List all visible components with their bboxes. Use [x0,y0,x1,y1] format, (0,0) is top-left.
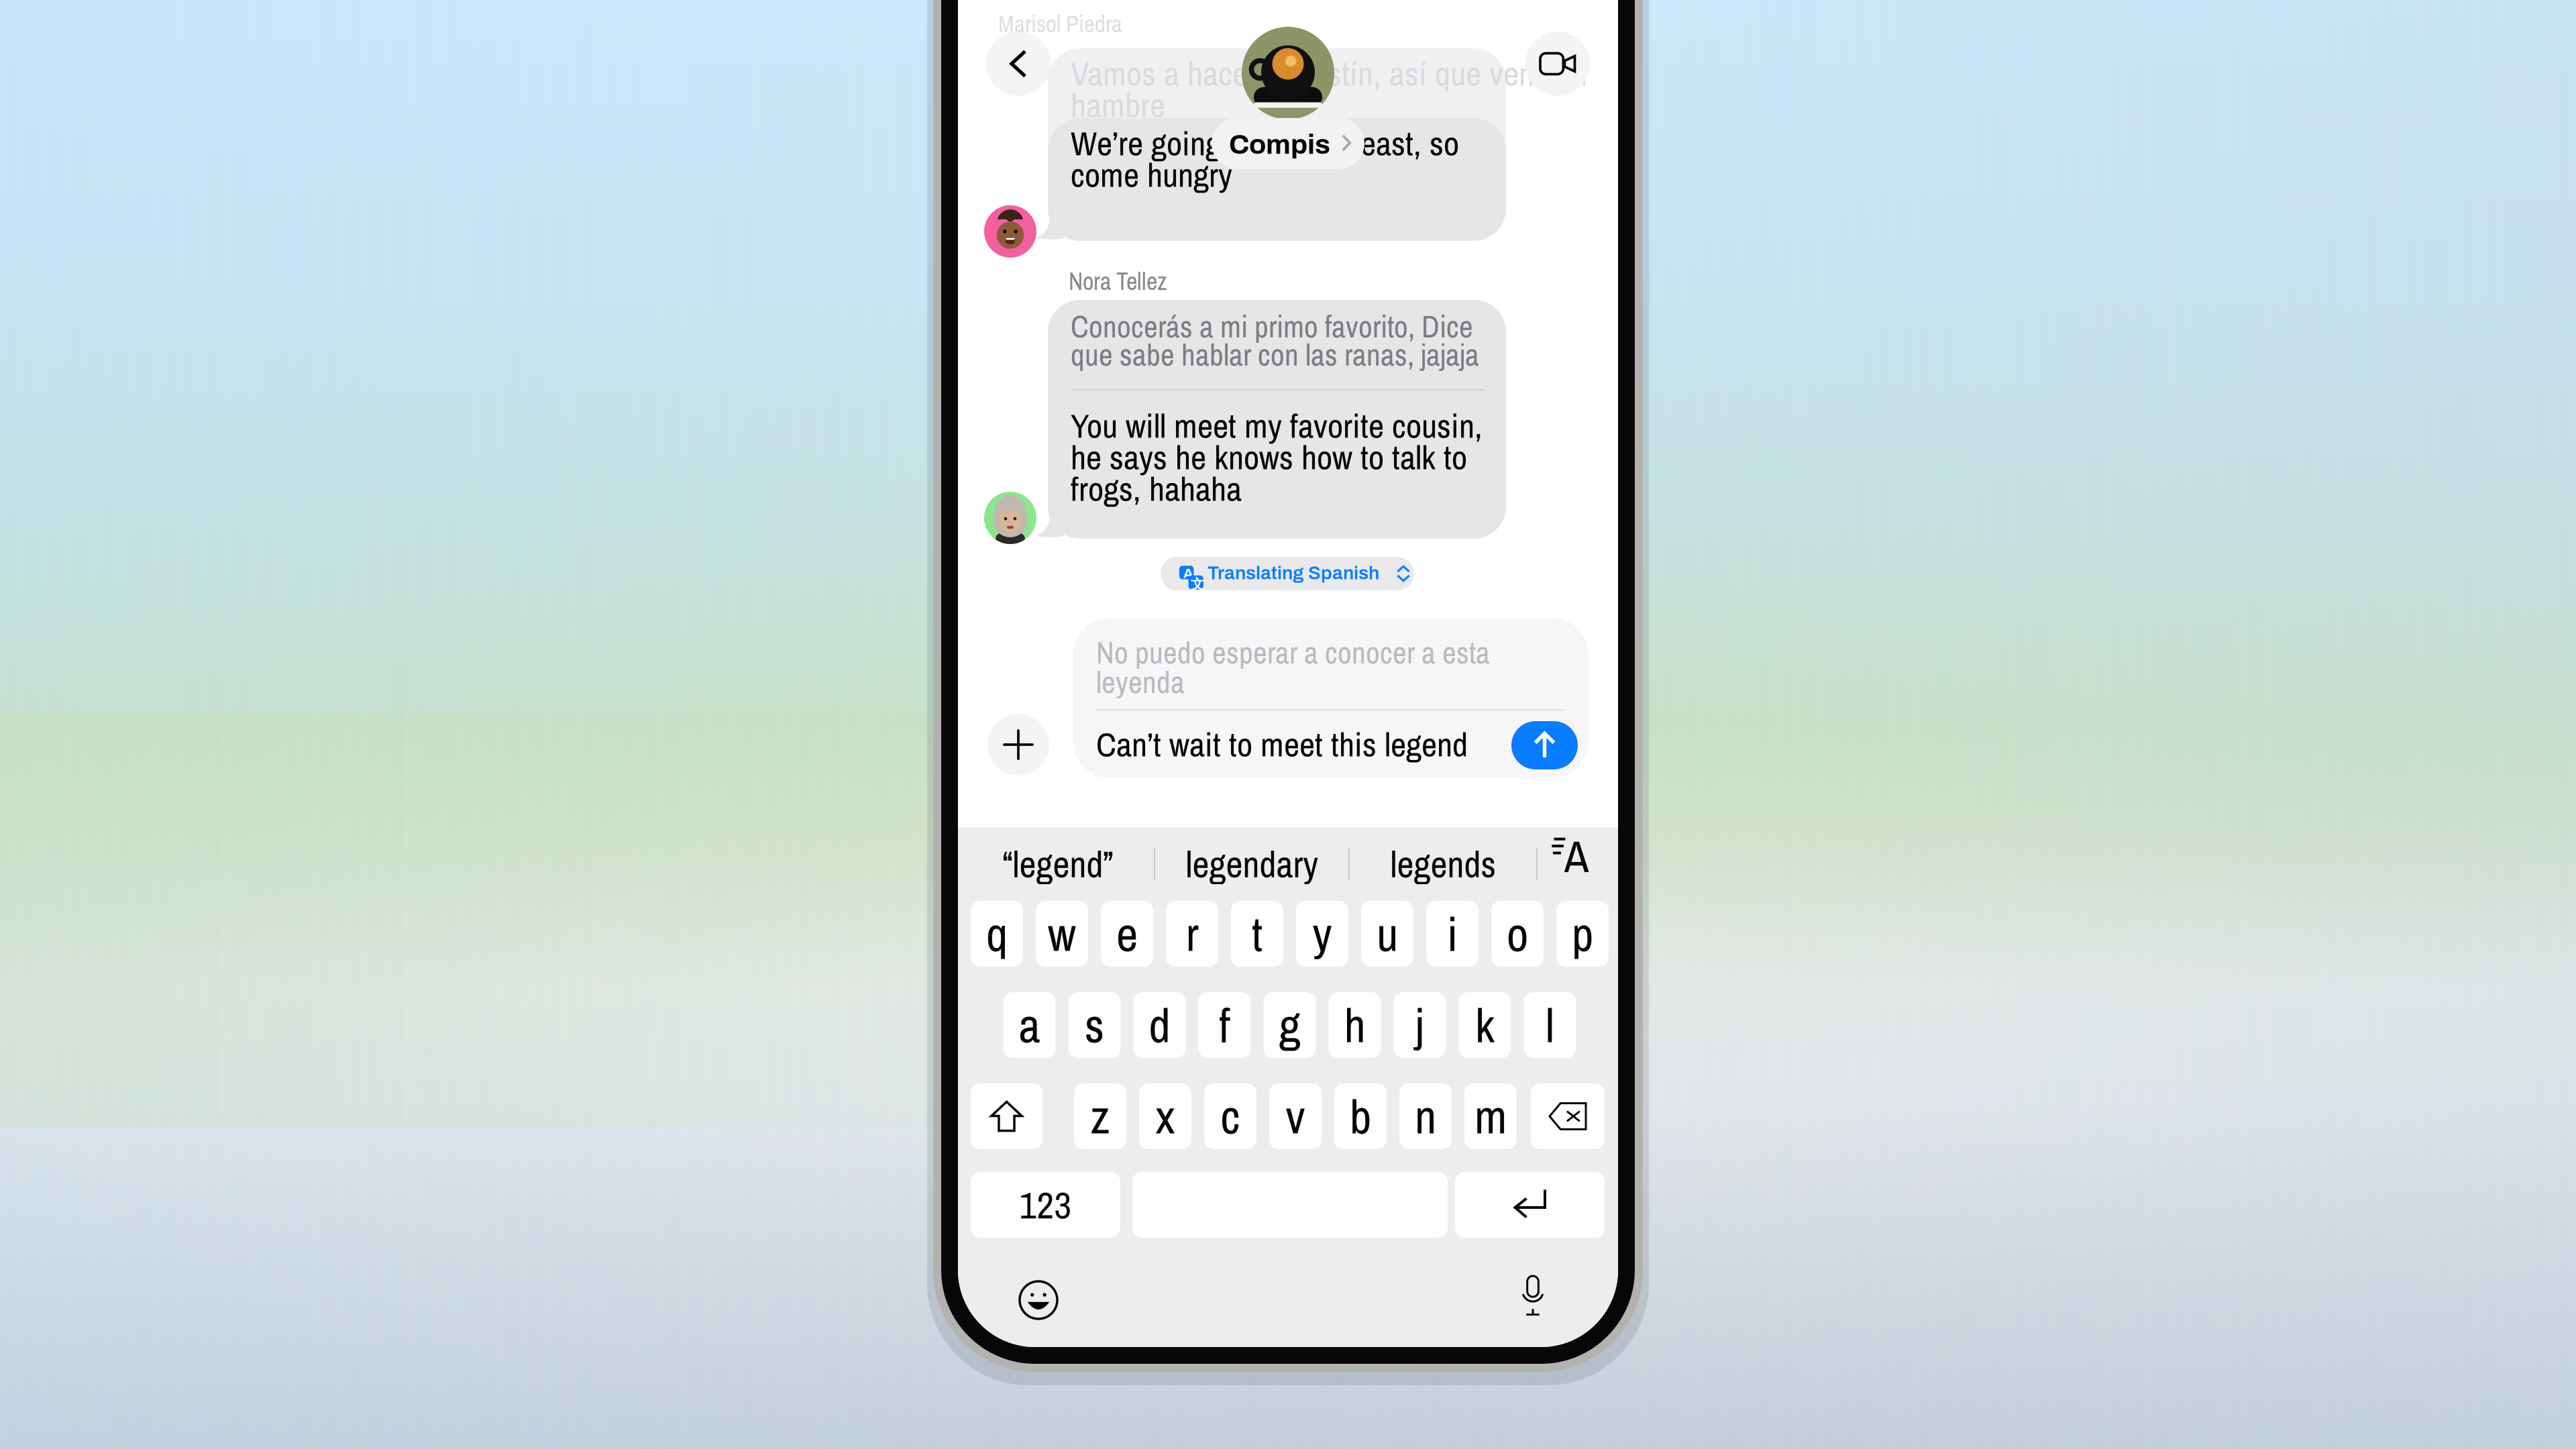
button[interactable]: x [1139,1083,1191,1149]
button[interactable]: d [1133,992,1186,1058]
button[interactable]: q [971,901,1023,967]
staticText: d [1149,993,1170,1057]
button[interactable]: b [1334,1083,1387,1149]
button[interactable]: w [1036,901,1088,967]
button[interactable]: a [1003,992,1056,1058]
staticText: a [1019,993,1040,1057]
staticText: l [1546,993,1554,1057]
staticText: 123 [1019,1180,1072,1230]
staticText: You will meet my favorite cousin, [1071,402,1483,448]
button[interactable]: Emoji keyboard [1005,1267,1072,1334]
button[interactable]: j [1394,992,1446,1058]
staticText: m [1474,1084,1507,1148]
staticText: “legend” [1003,839,1113,889]
staticText: legendary [1186,839,1318,889]
button[interactable]: u [1361,901,1413,967]
staticText: e [1116,902,1138,966]
staticText: w [1048,902,1076,966]
staticText: x [1156,1084,1175,1148]
button[interactable]: Delete [1531,1083,1605,1149]
button[interactable]: Shift [971,1083,1042,1149]
button[interactable]: t [1231,901,1283,967]
staticText: Compis [1229,129,1330,160]
staticText: Vamos a hacer un festín, así que ven con [1071,50,1587,96]
button[interactable]: m [1464,1083,1517,1149]
staticText: Translating Spanish [1207,563,1379,583]
button[interactable]: n [1399,1083,1452,1149]
button[interactable]: Compis [1212,118,1364,169]
staticText: y [1312,902,1332,966]
staticText: v [1286,1084,1305,1148]
staticText: A [1183,566,1193,581]
button[interactable]: y [1296,901,1348,967]
staticText: p [1572,902,1593,966]
button[interactable]: Add attachment [987,714,1049,775]
button[interactable]: h [1329,992,1381,1058]
button[interactable]: s [1068,992,1121,1058]
button[interactable]: 123 [971,1172,1120,1238]
staticText: Nora Tellez [1069,265,1167,298]
staticText: c [1221,1084,1240,1148]
staticText: t [1252,902,1263,966]
button[interactable]: Back to conversations [986,32,1051,96]
button[interactable]: FaceTime video call [1525,32,1590,96]
staticText: k [1475,993,1495,1057]
staticText: u [1377,902,1398,966]
staticText: j [1415,993,1424,1057]
button[interactable]: i [1426,901,1479,967]
button[interactable]: A [1161,557,1414,590]
button[interactable]: k [1459,992,1511,1058]
button[interactable]: legends [1350,838,1536,890]
button[interactable]: o [1491,901,1544,967]
button[interactable]: Return [1455,1172,1605,1238]
staticText: q [986,902,1008,966]
button[interactable]: Dictation [1499,1263,1566,1330]
button[interactable]: p [1556,901,1609,967]
staticText: frogs, hahaha [1071,466,1242,511]
button[interactable]: “legend” [962,838,1154,890]
staticText: come hungry [1071,152,1232,197]
staticText: r [1186,902,1198,966]
button[interactable]: r [1166,901,1218,967]
staticText: b [1350,1084,1371,1148]
staticText: We’re going to have a feast, so [1071,120,1459,166]
staticText: o [1507,902,1528,966]
staticText: Marisol Piedra [998,8,1122,39]
button[interactable]: Predictive text options [1538,838,1601,890]
staticText: legends [1390,839,1496,889]
staticText: z [1090,1084,1110,1148]
staticText: i [1447,902,1458,966]
staticText: Can’t wait to meet this legend [1096,721,1468,767]
staticText: A [1564,826,1589,886]
staticText: que sabe hablar con las ranas, jajaja [1071,334,1479,375]
staticText: Conocerás a mi primo favorito, Dice [1071,306,1473,347]
button[interactable]: e [1101,901,1153,967]
button[interactable]: legendary [1155,838,1348,890]
staticText: h [1344,993,1365,1057]
button[interactable]: l [1524,992,1576,1058]
staticText: leyenda [1096,661,1185,702]
button[interactable]: f [1198,992,1251,1058]
staticText: No puedo esperar a conocer a esta [1096,632,1490,673]
button[interactable]: z [1074,1083,1126,1149]
staticText: s [1085,993,1104,1057]
button[interactable]: c [1204,1083,1256,1149]
button[interactable]: v [1269,1083,1322,1149]
staticText: g [1279,993,1300,1057]
button[interactable]: Send [1511,721,1578,769]
button[interactable]: g [1264,992,1316,1058]
staticText: hambre [1071,82,1165,128]
staticText: f [1219,993,1230,1057]
staticText: 文 [1191,576,1204,593]
staticText: he says he knows how to talk to [1071,434,1467,480]
staticText: n [1415,1084,1436,1148]
